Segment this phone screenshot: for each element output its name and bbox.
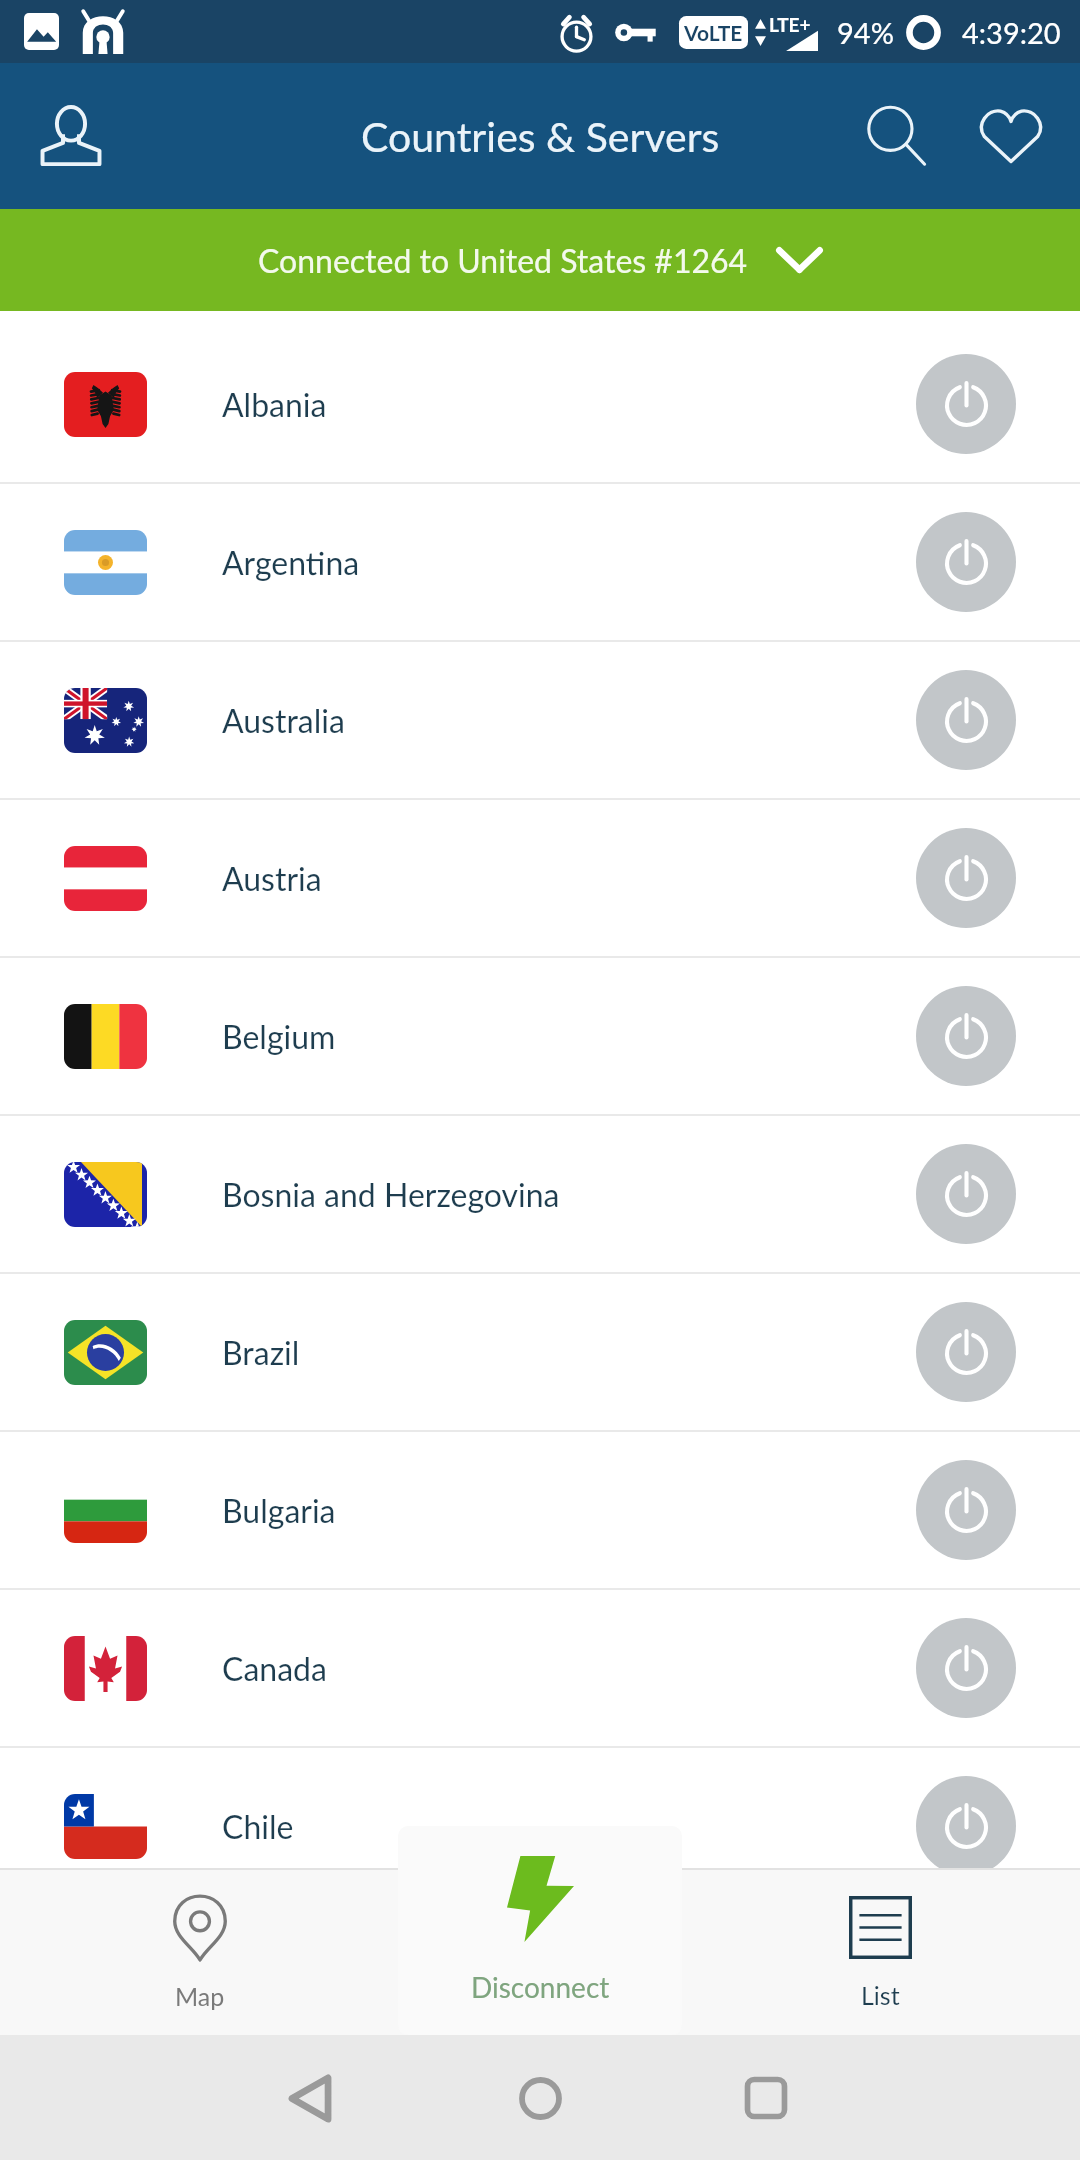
button[interactable]: Connected to United States #1264	[0, 209, 1080, 311]
staticText: Australia	[222, 701, 345, 739]
staticText: Map	[175, 1981, 225, 2011]
button[interactable]: Connect	[916, 986, 1016, 1086]
button[interactable]: Belgium	[0, 958, 1080, 1116]
button[interactable]: Connect	[916, 1460, 1016, 1560]
button[interactable]: Canada	[0, 1590, 1080, 1748]
button[interactable]: Connect	[916, 354, 1016, 454]
button[interactable]: Disconnect	[398, 1826, 682, 2035]
button[interactable]: Argentina	[0, 484, 1080, 642]
button[interactable]: List	[680, 1868, 1080, 2035]
button[interactable]: Chile	[0, 1748, 1080, 1906]
button[interactable]: Recents	[704, 2036, 828, 2160]
button[interactable]: Connect	[916, 512, 1016, 612]
staticText: Brazil	[222, 1333, 300, 1371]
staticText: VoLTE	[684, 20, 743, 45]
button[interactable]: Austria	[0, 800, 1080, 958]
button[interactable]: Favorites	[954, 79, 1068, 193]
button[interactable]: Map	[0, 1868, 400, 2035]
staticText: 4:39:20	[962, 15, 1061, 50]
staticText: Bulgaria	[222, 1491, 336, 1529]
button[interactable]: Connect	[916, 1618, 1016, 1718]
button[interactable]: Connect	[916, 1776, 1016, 1876]
button[interactable]: Back	[248, 2036, 372, 2160]
button[interactable]: Australia	[0, 642, 1080, 800]
staticText: 94%	[837, 15, 894, 50]
staticText: LTE+	[769, 13, 811, 36]
staticText: Disconnect	[471, 1970, 610, 2004]
staticText: List	[861, 1980, 900, 2010]
button[interactable]: Search	[840, 79, 954, 193]
button[interactable]: Albania	[0, 326, 1080, 484]
button[interactable]: Connect	[916, 1302, 1016, 1402]
button[interactable]: Bulgaria	[0, 1432, 1080, 1590]
button[interactable]: Connect	[916, 828, 1016, 928]
button[interactable]: Brazil	[0, 1274, 1080, 1432]
staticText: Austria	[222, 859, 322, 897]
staticText: Bosnia and Herzegovina	[222, 1175, 560, 1213]
staticText: Chile	[222, 1807, 294, 1845]
staticText: Countries & Servers	[361, 112, 720, 161]
button[interactable]: Bosnia and Herzegovina	[0, 1116, 1080, 1274]
staticText: Argentina	[222, 543, 360, 581]
button[interactable]: Account	[14, 79, 128, 193]
button[interactable]: Home	[478, 2036, 602, 2160]
staticText: Canada	[222, 1649, 327, 1687]
button[interactable]: Connect	[916, 1144, 1016, 1244]
staticText: Belgium	[222, 1017, 336, 1055]
staticText: Albania	[222, 385, 327, 423]
staticText: Connected to United States #1264	[258, 241, 748, 279]
button[interactable]: Connect	[916, 670, 1016, 770]
